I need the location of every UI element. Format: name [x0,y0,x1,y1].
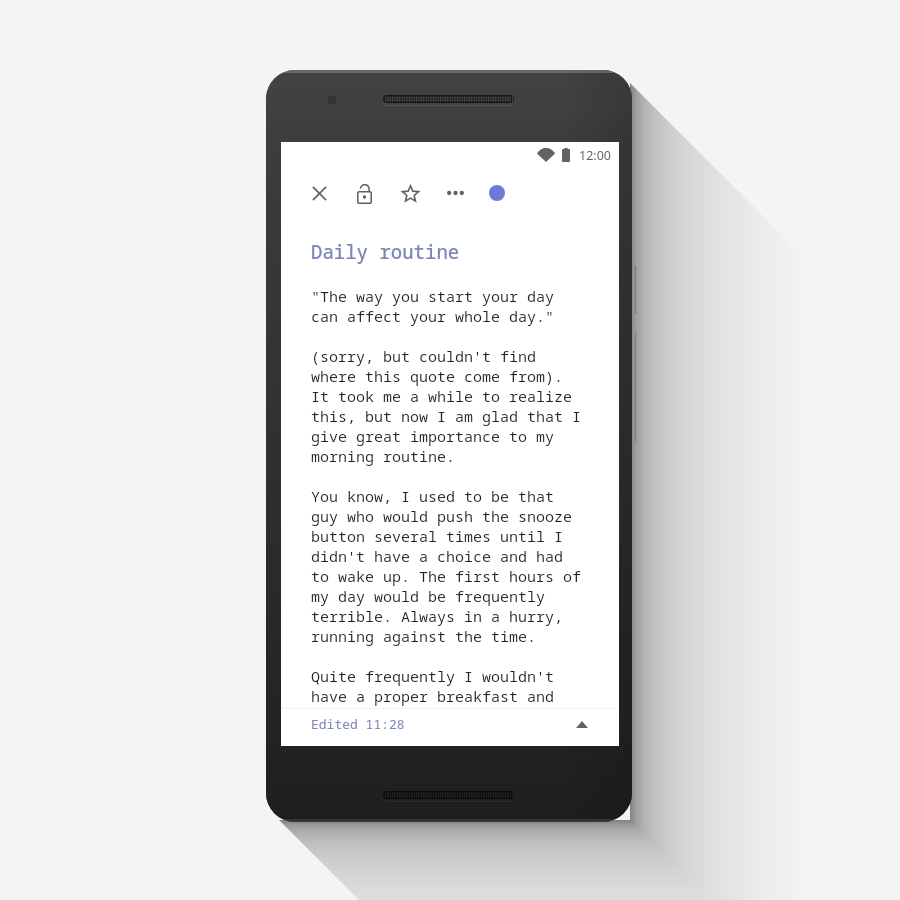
staticText: Daily routine [311,239,460,265]
button[interactable]: More options [443,181,467,205]
button[interactable]: Close [307,181,331,205]
button[interactable]: Lock [353,181,377,205]
button[interactable]: Expand [572,714,592,734]
button[interactable]: Account [485,181,509,205]
staticText: Edited 11:28 [311,715,405,733]
button[interactable]: Star [398,181,422,205]
staticText: 12:00 [579,147,611,164]
staticText: "The way you start your day can affect y… [311,286,581,706]
